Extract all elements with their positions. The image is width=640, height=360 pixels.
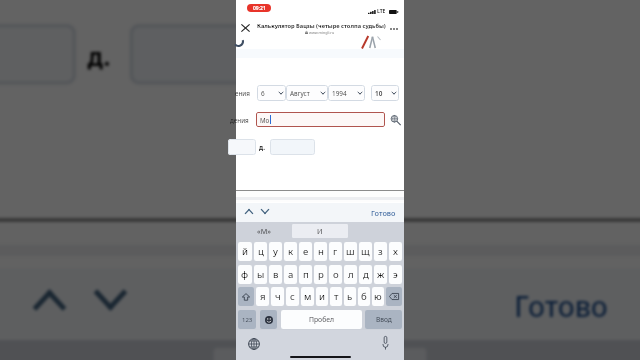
button[interactable]: п [299,265,312,284]
button[interactable]: ю [372,287,384,306]
staticText: т [334,290,339,303]
button[interactable]: к [284,242,297,261]
button[interactable]: Готово [371,208,396,218]
button[interactable]: э [389,265,402,284]
button[interactable]: Emoji [260,310,277,329]
button[interactable]: 6 [257,85,286,101]
button[interactable]: Shift [238,287,254,306]
staticText: 09:21 [253,5,266,12]
button[interactable]: И [292,224,348,238]
button[interactable]: Change keyboard [248,338,260,350]
button[interactable]: н [314,242,327,261]
button[interactable]: т [330,287,342,306]
staticText: Мо [260,116,270,124]
staticText: н [318,245,324,258]
button[interactable]: ф [238,265,252,284]
staticText: д. [259,143,265,152]
staticText: х [393,245,398,258]
staticText: ч [275,290,281,303]
staticText: а [288,268,294,281]
staticText: г [333,245,338,258]
button[interactable]: а [284,265,297,284]
button[interactable]: о [329,265,342,284]
button[interactable]: х [389,242,402,261]
staticText: Пробел [309,315,334,324]
button[interactable]: ч [271,287,284,306]
staticText: щ [361,245,370,258]
button[interactable]: И [213,348,427,360]
button[interactable]: Готово [514,287,610,325]
button[interactable]: Previous field [34,290,65,309]
button[interactable]: м [301,287,314,306]
staticText: Калькулятор Бацзы (четыре столпа судьбы) [257,22,386,30]
button[interactable]: й [238,242,252,261]
button[interactable]: у [269,242,282,261]
button[interactable]: е [299,242,312,261]
staticText: к [288,245,294,258]
staticText: п [303,268,309,281]
staticText: Готово [371,208,396,218]
button[interactable]: Close [241,24,250,32]
staticText: ю [374,290,382,303]
button[interactable]: 123 [238,310,256,329]
staticText: ж [377,268,385,281]
button[interactable]: с [286,287,299,306]
button[interactable]: 1994 [328,85,365,101]
button[interactable]: з [374,242,387,261]
button[interactable]: г [329,242,342,261]
button[interactable]: л [344,265,357,284]
button[interactable]: Мо [256,112,385,127]
button[interactable]: «М» [236,222,292,240]
button[interactable]: р [314,265,327,284]
staticText: в [273,268,279,281]
staticText: з [378,245,383,258]
button[interactable]: щ [359,242,372,261]
button[interactable]: Previous field [245,209,253,214]
button[interactable]: д [359,265,372,284]
button[interactable]: ж [374,265,387,284]
button[interactable]: Dictation [382,336,389,350]
button[interactable]: Search the web [390,115,400,125]
staticText: й [242,245,248,258]
staticText: ы [257,268,265,281]
button[interactable]: Backspace [386,287,402,306]
staticText: 10 [375,89,383,98]
staticText: Готово [514,287,610,325]
button[interactable]: Август [286,85,328,101]
staticText: LTE [377,8,386,15]
button[interactable]: ш [344,242,357,261]
staticText: 123 [242,316,253,324]
button[interactable]: Next field [95,290,126,309]
staticText: р [318,268,324,281]
staticText: «М» [257,226,271,236]
staticText: ения [235,89,250,98]
button[interactable]: Next field [261,209,269,214]
staticText: ц [258,245,264,258]
button[interactable]: Ввод [365,310,402,329]
button[interactable]: б [358,287,370,306]
button[interactable]: ь [344,287,356,306]
staticText: с [290,290,295,303]
button[interactable]: и [316,287,328,306]
button[interactable]: More options [390,26,400,31]
staticText: И [317,226,323,236]
staticText: б [361,290,367,303]
staticText: и [319,290,325,303]
button[interactable]: Пробел [281,310,362,329]
staticText: Ввод [376,315,392,324]
staticText: И [309,355,331,360]
button[interactable]: я [256,287,269,306]
staticText: о [333,268,339,281]
button[interactable]: ы [254,265,267,284]
button[interactable]: в [269,265,282,284]
button[interactable]: 10 [371,85,399,101]
staticText: д [363,268,369,281]
staticText: 6 [261,89,265,98]
staticText: ф [241,268,249,281]
staticText: Август [290,89,310,98]
button[interactable]: ц [254,242,267,261]
